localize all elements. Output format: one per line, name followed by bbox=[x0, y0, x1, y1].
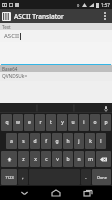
button[interactable]: m bbox=[85, 151, 95, 167]
staticText: g bbox=[55, 138, 59, 145]
button[interactable]: Backspace bbox=[96, 151, 111, 167]
button[interactable]: d bbox=[30, 133, 40, 149]
staticText: f bbox=[45, 138, 47, 145]
staticText: l bbox=[100, 138, 102, 145]
button[interactable]: v bbox=[52, 151, 62, 167]
button[interactable]: y bbox=[57, 114, 67, 131]
staticText: z bbox=[22, 156, 25, 163]
staticText: t bbox=[50, 119, 52, 126]
button[interactable]: l bbox=[96, 133, 106, 149]
staticText: u bbox=[71, 119, 75, 126]
button[interactable]: Recent apps bbox=[80, 186, 96, 200]
button[interactable]: ASCII bbox=[0, 30, 112, 42]
button[interactable]: t bbox=[46, 114, 56, 131]
staticText: y bbox=[61, 119, 64, 126]
button[interactable]: z bbox=[18, 151, 29, 167]
button[interactable]: n bbox=[74, 151, 84, 167]
button[interactable]: j bbox=[74, 133, 84, 149]
staticText: k bbox=[89, 138, 92, 145]
button[interactable]: Done bbox=[92, 169, 111, 185]
staticText: n bbox=[77, 156, 81, 163]
staticText: ASCII bbox=[4, 32, 19, 40]
button[interactable]: . bbox=[81, 169, 91, 185]
staticText: ASCII Translator bbox=[14, 12, 100, 21]
staticText: q bbox=[5, 119, 9, 126]
button[interactable]: Home bbox=[48, 186, 64, 200]
button[interactable]: u bbox=[68, 114, 78, 131]
button[interactable]: r bbox=[35, 114, 45, 131]
staticText: w bbox=[16, 119, 20, 126]
button[interactable]: ?123 bbox=[1, 169, 17, 185]
staticText: x bbox=[34, 156, 37, 163]
staticText: 1:57 bbox=[101, 2, 110, 8]
staticText: b bbox=[66, 156, 70, 163]
button[interactable]: e bbox=[24, 114, 34, 131]
staticText: m bbox=[88, 156, 93, 163]
staticText: 0 bbox=[77, 3, 80, 8]
staticText: j bbox=[78, 138, 80, 145]
button[interactable]: k bbox=[85, 133, 95, 149]
staticText: e bbox=[28, 119, 31, 126]
staticText: p bbox=[104, 119, 108, 126]
button[interactable]: s bbox=[18, 133, 29, 149]
staticText: QVNDSUk= bbox=[2, 73, 28, 80]
staticText: , bbox=[22, 174, 24, 181]
staticText: c bbox=[45, 156, 48, 163]
staticText: d bbox=[33, 138, 37, 145]
button[interactable]: Back bbox=[16, 186, 32, 200]
button[interactable]: App icon bbox=[2, 12, 11, 21]
staticText: r bbox=[39, 119, 42, 126]
staticText: ?123 bbox=[5, 175, 14, 180]
button[interactable]: q bbox=[1, 114, 12, 131]
button[interactable]: h bbox=[63, 133, 73, 149]
button[interactable]: c bbox=[41, 151, 51, 167]
button[interactable]: x bbox=[30, 151, 40, 167]
button[interactable]: More options bbox=[100, 11, 110, 21]
staticText: Text bbox=[2, 24, 11, 30]
button[interactable]: Voice input bbox=[102, 105, 109, 112]
button[interactable]: Shift bbox=[1, 151, 17, 167]
button[interactable]: o bbox=[90, 114, 100, 131]
button[interactable]: g bbox=[52, 133, 62, 149]
button[interactable]: w bbox=[13, 114, 23, 131]
staticText: . bbox=[85, 174, 87, 181]
staticText: s bbox=[22, 138, 25, 145]
staticText: Done bbox=[97, 175, 107, 180]
staticText: Base64 bbox=[2, 66, 18, 72]
staticText: h bbox=[66, 138, 70, 145]
staticText: a bbox=[10, 138, 13, 145]
button[interactable]: QVNDSUk= bbox=[0, 72, 112, 81]
button[interactable]: b bbox=[63, 151, 73, 167]
button[interactable]: , bbox=[18, 169, 28, 185]
button[interactable]: a bbox=[6, 133, 17, 149]
staticText: v bbox=[56, 156, 59, 163]
staticText: i bbox=[83, 119, 85, 126]
button[interactable]: f bbox=[41, 133, 51, 149]
button[interactable]: i bbox=[79, 114, 89, 131]
staticText: o bbox=[93, 119, 97, 126]
button[interactable]: p bbox=[101, 114, 111, 131]
